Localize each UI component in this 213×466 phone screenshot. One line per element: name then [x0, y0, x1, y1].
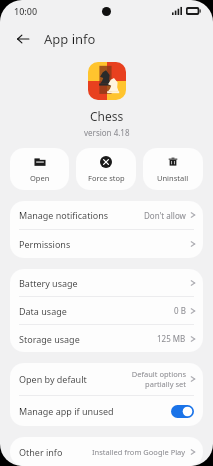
staticText: 0 B	[174, 305, 186, 316]
staticText: Chess	[90, 108, 124, 124]
button[interactable]: Back	[10, 26, 36, 52]
button[interactable]: Other info	[10, 437, 203, 466]
staticText: App info	[44, 30, 96, 48]
button[interactable]: Permissions	[10, 230, 203, 258]
staticText: 10:00	[14, 5, 38, 17]
button[interactable]: Data usage	[10, 297, 203, 324]
button[interactable]: Force stop	[76, 148, 136, 190]
staticText: Manage notifications	[19, 209, 109, 221]
staticText: Uninstall	[157, 173, 189, 183]
staticText: Storage usage	[19, 333, 80, 345]
staticText: Other info	[19, 446, 63, 458]
staticText: Don't allow	[144, 210, 186, 221]
staticText: Open	[30, 173, 50, 183]
button[interactable]: Open	[10, 148, 69, 190]
staticText: version 4.18	[84, 127, 130, 138]
button[interactable]: Open by default	[10, 363, 203, 395]
staticText: Force stop	[88, 173, 125, 183]
staticText: Open by default	[19, 373, 87, 385]
button[interactable]: Manage app if unused	[10, 396, 203, 426]
staticText: Permissions	[19, 238, 71, 250]
staticText: Battery usage	[19, 277, 78, 289]
staticText: Data usage	[19, 305, 67, 317]
staticText: Default options partially set	[118, 369, 186, 389]
button[interactable]: Manage app if unused	[171, 405, 194, 418]
button[interactable]: Storage usage	[10, 325, 203, 352]
button[interactable]: Uninstall	[143, 148, 203, 190]
staticText: 125 MB	[157, 333, 186, 344]
button[interactable]: Manage notifications	[10, 201, 203, 229]
staticText: Installed from Google Play	[92, 447, 186, 457]
staticText: Manage app if unused	[19, 405, 114, 417]
button[interactable]: Battery usage	[10, 269, 203, 296]
